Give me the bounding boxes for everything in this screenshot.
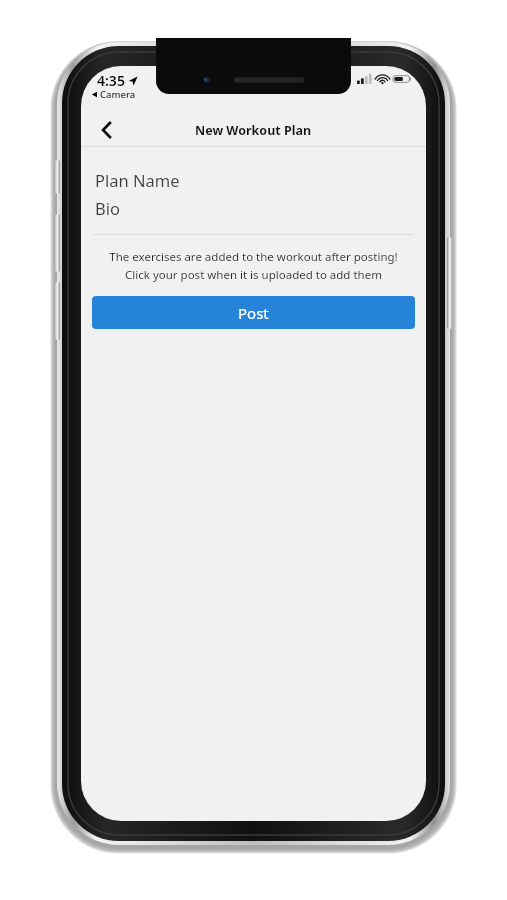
button[interactable]: Plan Name <box>95 167 412 193</box>
staticText: Post <box>238 303 269 323</box>
staticText: Bio <box>95 197 120 219</box>
other: Power <box>447 237 452 329</box>
button[interactable]: Back <box>89 114 123 146</box>
button[interactable]: Camera <box>91 88 136 101</box>
staticText: New Workout Plan <box>195 122 312 139</box>
staticText: Camera <box>100 88 136 101</box>
other: Volume up <box>55 214 60 272</box>
staticText: Click your post when it is uploaded to a… <box>87 267 420 283</box>
staticText: The exercises are added to the workout a… <box>87 249 420 265</box>
staticText: 4:35 <box>97 71 125 90</box>
other: Volume down <box>55 282 60 340</box>
other: Mute switch <box>55 160 60 194</box>
button[interactable]: Post <box>92 296 415 329</box>
button[interactable]: Bio <box>95 195 412 221</box>
staticText: Plan Name <box>95 169 180 191</box>
